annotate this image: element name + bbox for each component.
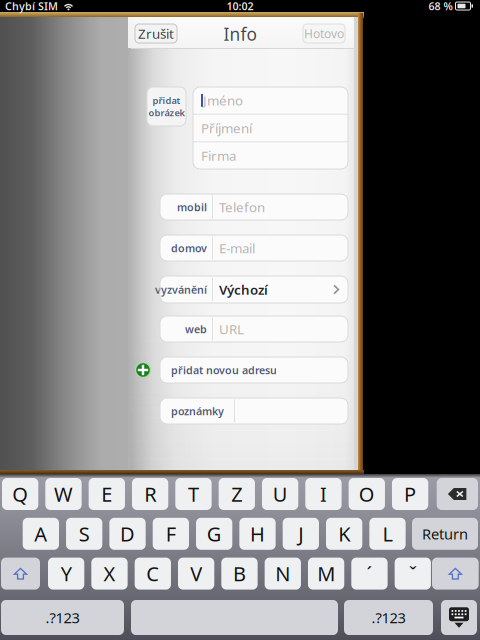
button[interactable]: P — [392, 478, 428, 510]
button[interactable]: Y — [48, 558, 84, 590]
staticText: Příjmení — [201, 119, 252, 137]
staticText: A — [34, 520, 47, 547]
staticText: R — [144, 481, 156, 507]
staticText: V — [190, 560, 202, 587]
button[interactable]: L — [369, 518, 406, 550]
staticText: O — [359, 481, 375, 507]
staticText: .?123 — [45, 608, 79, 627]
button[interactable]: A — [23, 518, 59, 550]
staticText: Info — [223, 22, 256, 45]
button[interactable]: N — [265, 558, 301, 590]
button[interactable]: F — [153, 518, 189, 550]
button[interactable]: poznámky — [160, 398, 348, 424]
staticText: E — [101, 481, 112, 507]
staticText: vyzvánění — [155, 282, 207, 297]
staticText: poznámky — [171, 404, 224, 418]
button[interactable]: ˇ — [395, 558, 431, 590]
staticText: přidat — [152, 94, 180, 106]
button[interactable]: X — [91, 558, 128, 590]
staticText: E-mail — [219, 239, 255, 257]
staticText: Zrušit — [138, 25, 174, 42]
button[interactable]: K — [326, 518, 362, 550]
button[interactable]: přidat novou adresu — [160, 357, 348, 383]
staticText: C — [146, 560, 159, 587]
button[interactable]: D — [109, 518, 146, 550]
staticText: ˇ — [409, 560, 417, 587]
staticText: P — [404, 481, 416, 507]
staticText: ´ — [366, 560, 372, 587]
button[interactable]: W — [45, 478, 82, 510]
button[interactable]: O — [349, 478, 385, 510]
button[interactable]: domov — [160, 235, 348, 261]
button[interactable]: Q — [2, 478, 38, 510]
staticText: D — [120, 520, 135, 547]
staticText: M — [317, 560, 335, 587]
button[interactable]: přidat — [147, 87, 186, 126]
staticText: obrázek — [148, 106, 184, 119]
button[interactable]: mobil — [160, 194, 348, 220]
staticText: Return — [422, 524, 468, 544]
staticText: K — [338, 520, 350, 547]
staticText: Q — [12, 481, 28, 507]
button[interactable]: Hide keyboard — [441, 600, 477, 635]
staticText: G — [207, 520, 222, 547]
button[interactable]: ´ — [351, 558, 388, 590]
button[interactable]: S — [66, 518, 102, 550]
button[interactable]: I — [305, 478, 342, 510]
button[interactable]: M — [308, 558, 344, 590]
button[interactable]: Space — [131, 600, 338, 635]
button[interactable]: vyzvánění — [160, 276, 348, 303]
button[interactable]: Shift — [432, 558, 479, 590]
staticText: W — [54, 481, 73, 507]
staticText: Jméno — [203, 91, 243, 109]
button[interactable]: Z — [219, 478, 255, 510]
staticText: 10:02 — [226, 0, 253, 13]
button[interactable]: G — [196, 518, 232, 550]
staticText: J — [298, 520, 303, 547]
staticText: Výchozí — [219, 281, 268, 298]
staticText: .?123 — [371, 608, 405, 627]
staticText: domov — [171, 241, 207, 255]
button[interactable]: T — [175, 478, 212, 510]
staticText: Telefon — [219, 198, 265, 216]
staticText: H — [250, 520, 265, 547]
button[interactable]: H — [239, 518, 276, 550]
button[interactable]: Hotovo — [303, 24, 345, 43]
button[interactable]: E — [89, 478, 125, 510]
staticText: X — [103, 560, 115, 587]
button[interactable]: Delete — [437, 478, 478, 510]
staticText: URL — [219, 320, 244, 338]
staticText: I — [320, 481, 327, 507]
staticText: Chybí SIM — [5, 0, 58, 13]
staticText: N — [275, 560, 290, 587]
staticText: přidat novou adresu — [171, 363, 277, 377]
button[interactable]: C — [135, 558, 171, 590]
staticText: web — [185, 322, 207, 336]
button[interactable]: web — [160, 316, 348, 342]
staticText: B — [233, 560, 246, 587]
button[interactable]: J — [283, 518, 319, 550]
staticText: F — [166, 520, 176, 547]
button[interactable]: .?123 — [1, 600, 124, 635]
staticText: S — [79, 520, 90, 547]
button[interactable]: U — [262, 478, 298, 510]
button[interactable]: .?123 — [344, 600, 433, 635]
button[interactable]: Add new address — [135, 362, 151, 378]
staticText: Hotovo — [304, 25, 344, 41]
staticText: T — [188, 481, 199, 507]
button[interactable]: V — [178, 558, 214, 590]
button[interactable]: Shift — [1, 558, 40, 590]
button[interactable]: B — [221, 558, 258, 590]
staticText: 68 % — [428, 0, 452, 13]
staticText: Y — [61, 560, 72, 587]
staticText: U — [273, 481, 288, 507]
staticText: L — [382, 520, 392, 547]
button[interactable]: Zrušit — [135, 24, 177, 43]
staticText: mobil — [177, 200, 207, 214]
staticText: Z — [231, 481, 242, 507]
button[interactable]: Return — [412, 518, 478, 550]
staticText: Firma — [201, 147, 236, 164]
button[interactable]: R — [132, 478, 168, 510]
